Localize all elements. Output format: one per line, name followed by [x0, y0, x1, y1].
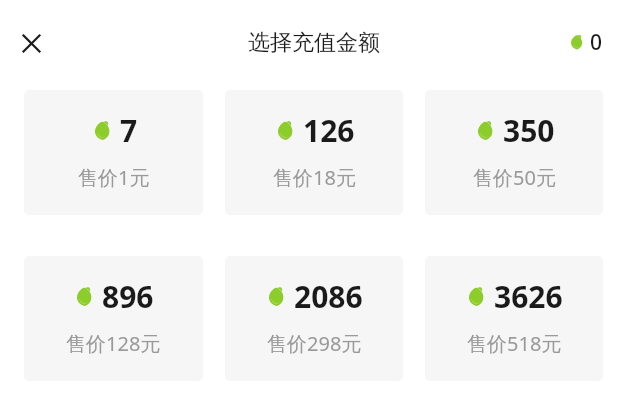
- button[interactable]: 2086: [225, 256, 403, 381]
- staticText: 售价518元: [467, 330, 562, 357]
- staticText: 2086: [294, 276, 363, 317]
- staticText: 126: [303, 110, 355, 151]
- staticText: 售价1元: [78, 164, 150, 191]
- button[interactable]: 3626: [425, 256, 603, 381]
- staticText: 3626: [494, 276, 563, 317]
- staticText: 0: [590, 28, 603, 57]
- staticText: 售价50元: [473, 164, 556, 191]
- button[interactable]: Close: [12, 24, 50, 62]
- staticText: 售价298元: [267, 330, 362, 357]
- button[interactable]: 350: [425, 90, 603, 215]
- staticText: 896: [102, 276, 154, 317]
- staticText: 售价18元: [273, 164, 356, 191]
- staticText: 350: [503, 110, 555, 151]
- button[interactable]: 896: [24, 256, 203, 381]
- button[interactable]: 7: [24, 90, 203, 215]
- staticText: 7: [120, 110, 138, 151]
- staticText: 售价128元: [66, 330, 161, 357]
- button[interactable]: 0: [568, 28, 603, 57]
- staticText: 选择充值金额: [248, 29, 380, 57]
- button[interactable]: 126: [225, 90, 403, 215]
